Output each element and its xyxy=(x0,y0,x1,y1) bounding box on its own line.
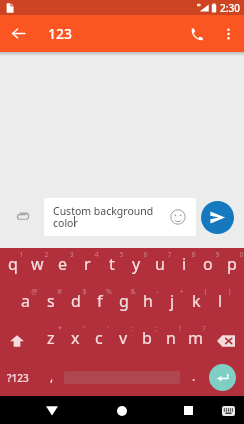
button[interactable]: ? xyxy=(183,322,207,359)
staticText: Custom background color xyxy=(53,204,154,230)
staticText: j xyxy=(170,290,175,312)
staticText: 0 xyxy=(239,250,244,260)
button[interactable]: @ xyxy=(13,285,38,322)
button[interactable]: 7 xyxy=(148,248,172,285)
staticText: s xyxy=(47,290,55,312)
staticText: 2:30 xyxy=(220,1,240,15)
staticText: e xyxy=(58,253,68,275)
staticText: r xyxy=(84,253,91,275)
staticText: f xyxy=(97,290,103,312)
staticText: p xyxy=(227,253,237,275)
staticText: t xyxy=(109,253,115,275)
staticText: 4 xyxy=(94,250,99,260)
button[interactable]: Switch keyboard xyxy=(217,398,239,423)
staticText: ?123 xyxy=(7,371,29,385)
staticText: b xyxy=(142,327,152,349)
button[interactable]: Emoji xyxy=(170,209,186,225)
staticText: . xyxy=(192,368,196,384)
button[interactable]: # xyxy=(38,285,63,322)
button[interactable]: 6 xyxy=(124,248,148,285)
button[interactable]: " xyxy=(63,322,87,359)
staticText: q xyxy=(8,253,18,275)
button[interactable]: Navigate up xyxy=(0,15,37,52)
staticText: + xyxy=(179,287,184,297)
button[interactable]: Enter xyxy=(207,359,244,396)
button[interactable]: Home xyxy=(111,398,133,423)
button[interactable]: Shift xyxy=(0,322,38,359)
staticText: l xyxy=(218,290,223,312)
button[interactable]: Backspace xyxy=(207,322,244,359)
staticText: x xyxy=(71,327,80,349)
staticText: d xyxy=(71,290,81,312)
staticText: ) xyxy=(228,287,231,297)
button[interactable]: ; xyxy=(135,322,159,359)
button[interactable]: . xyxy=(180,359,207,396)
staticText: v xyxy=(119,327,128,349)
button[interactable]: ! xyxy=(159,322,183,359)
staticText: * xyxy=(58,324,62,334)
button[interactable]: 9 xyxy=(196,248,220,285)
button[interactable]: * xyxy=(38,322,63,359)
button[interactable]: - xyxy=(136,285,160,322)
staticText: , xyxy=(50,368,54,384)
staticText: # xyxy=(57,287,62,297)
button[interactable]: Call xyxy=(179,17,213,51)
button[interactable]: & xyxy=(112,285,136,322)
staticText: c xyxy=(95,327,103,349)
staticText: ( xyxy=(204,287,207,297)
staticText: 5 xyxy=(119,250,124,260)
staticText: ' xyxy=(107,324,109,334)
staticText: " xyxy=(83,324,86,334)
button[interactable]: 1 xyxy=(0,248,25,285)
staticText: w xyxy=(31,253,44,275)
button[interactable]: Send xyxy=(201,201,234,234)
staticText: o xyxy=(203,253,213,275)
staticText: u xyxy=(155,253,165,275)
button[interactable]: + xyxy=(160,285,184,322)
staticText: 6 xyxy=(143,250,148,260)
staticText: 3 xyxy=(69,250,74,260)
staticText: 1 xyxy=(19,250,24,260)
button[interactable]: More options xyxy=(213,19,243,49)
staticText: g xyxy=(119,290,129,312)
button[interactable]: 5 xyxy=(100,248,124,285)
staticText: : xyxy=(131,324,133,334)
button[interactable]: ' xyxy=(87,322,111,359)
staticText: h xyxy=(143,290,153,312)
staticText: i xyxy=(182,253,187,275)
staticText: n xyxy=(166,327,176,349)
staticText: y xyxy=(132,253,141,275)
button[interactable]: % xyxy=(88,285,112,322)
staticText: @ xyxy=(31,287,38,297)
staticText: ! xyxy=(179,324,181,334)
button[interactable]: Attach xyxy=(0,198,44,236)
staticText: k xyxy=(192,290,201,312)
staticText: 7 xyxy=(167,250,172,260)
staticText: $ xyxy=(82,287,87,297)
button[interactable]: ?123 xyxy=(0,359,40,396)
button[interactable]: Recent apps xyxy=(177,398,199,423)
staticText: a xyxy=(21,290,30,312)
button[interactable]: ( xyxy=(184,285,208,322)
button[interactable]: 4 xyxy=(75,248,100,285)
button[interactable]: $ xyxy=(63,285,88,322)
button[interactable]: ) xyxy=(208,285,232,322)
button[interactable]: 2 xyxy=(25,248,50,285)
staticText: & xyxy=(130,287,136,297)
button[interactable]: Custom background color xyxy=(44,198,196,236)
staticText: % xyxy=(106,287,112,297)
staticText: m xyxy=(188,327,203,349)
button[interactable]: 0 xyxy=(220,248,244,285)
button[interactable]: , xyxy=(40,359,64,396)
button[interactable]: Back xyxy=(41,398,63,423)
staticText: - xyxy=(156,287,159,297)
staticText: ; xyxy=(155,324,157,334)
staticText: 9 xyxy=(215,250,220,260)
button[interactable]: : xyxy=(111,322,135,359)
staticText: ? xyxy=(202,324,206,334)
staticText: 2 xyxy=(44,250,49,260)
button[interactable]: 3 xyxy=(50,248,75,285)
button[interactable]: 8 xyxy=(172,248,196,285)
staticText: 8 xyxy=(191,250,196,260)
